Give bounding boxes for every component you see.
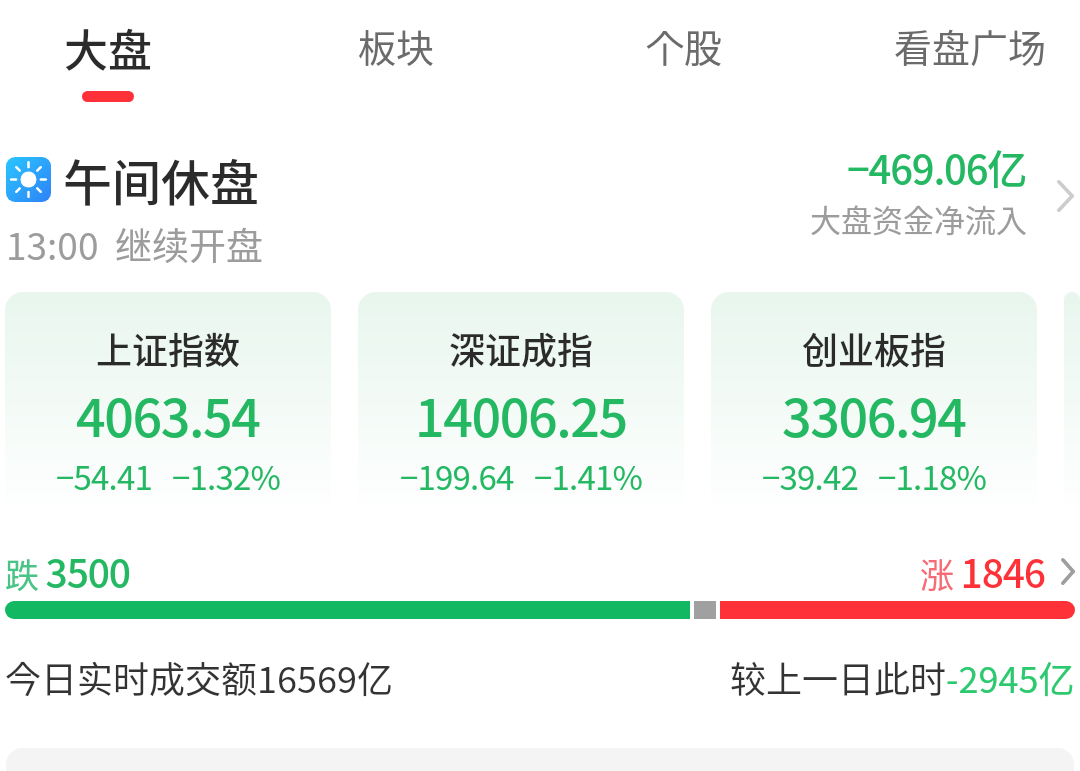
button[interactable] (1064, 292, 1080, 518)
staticText: 今日实时成交额16569亿 (5, 651, 393, 703)
staticText: 上证指数 (96, 322, 241, 374)
button[interactable]: 创业板指 (711, 292, 1037, 518)
staticText: −39.42 (762, 452, 858, 500)
staticText: −1.41% (534, 452, 643, 500)
staticText: 13:00 继续开盘 (6, 217, 264, 271)
button[interactable]: 个股 (634, 8, 735, 83)
staticText: 涨 1846 (920, 543, 1045, 599)
staticText: −54.41 (56, 452, 152, 500)
staticText: 4063.54 (76, 377, 260, 452)
staticText: 深证成指 (449, 322, 594, 374)
staticText: 午间休盘 (63, 144, 260, 215)
button[interactable]: 跌 3500 (5, 543, 130, 599)
staticText: 较上一日此时-2945亿 (730, 651, 1075, 703)
button[interactable]: 涨 1846 (920, 543, 1075, 599)
button[interactable]: 板块 (346, 8, 447, 83)
staticText: −1.18% (878, 452, 987, 500)
staticText: 大盘 (64, 16, 152, 80)
staticText: 创业板指 (802, 322, 947, 374)
staticText: −469.06亿 (847, 138, 1027, 196)
other: 涨跌家数详情 (1061, 558, 1075, 585)
staticText: 跌 3500 (5, 543, 130, 599)
staticText: 个股 (646, 18, 723, 73)
staticText: −199.64 (400, 452, 514, 500)
staticText: 板块 (358, 18, 435, 73)
staticText: 看盘广场 (894, 18, 1047, 73)
button[interactable]: 看盘广场 (882, 8, 1059, 83)
other: 大盘资金净流入详情 (1057, 180, 1074, 212)
button[interactable]: −469.06亿 (810, 144, 1074, 247)
button[interactable]: 深证成指 (358, 292, 684, 518)
staticText: 大盘资金净流入 (810, 196, 1027, 241)
staticText: 3306.94 (782, 377, 966, 452)
button[interactable]: 上证指数 (5, 292, 331, 518)
other: 午间休盘 (6, 157, 51, 202)
button[interactable]: 大盘 (50, 8, 166, 110)
staticText: −1.32% (172, 452, 281, 500)
staticText: 14006.25 (415, 377, 627, 452)
